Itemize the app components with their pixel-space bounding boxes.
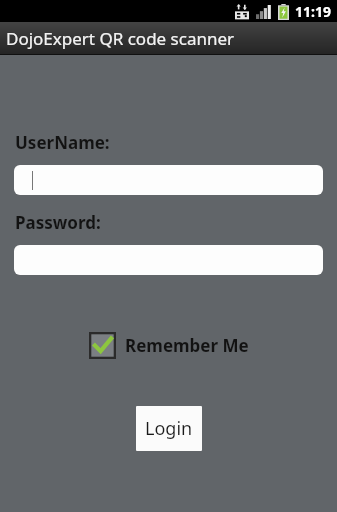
staticText: DojoExpert QR code scanner <box>6 27 235 50</box>
button[interactable]: Remember Me <box>87 330 251 361</box>
button[interactable]: Login <box>136 406 202 451</box>
staticText: Remember Me <box>125 334 249 357</box>
staticText: 11:19 <box>295 2 331 21</box>
staticText: Login <box>145 416 193 441</box>
button[interactable] <box>14 245 323 275</box>
button[interactable] <box>14 165 323 195</box>
staticText: Password: <box>15 211 101 234</box>
staticText: UserName: <box>15 131 110 154</box>
